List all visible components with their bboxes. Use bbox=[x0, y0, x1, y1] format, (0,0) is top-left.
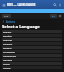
staticText: English bbox=[3, 30, 61, 33]
staticText: Svenska bbox=[3, 58, 61, 61]
button[interactable]: Polski bbox=[2, 62, 62, 65]
staticText: Select a Language bbox=[2, 24, 40, 30]
staticText: Actions bbox=[6, 20, 15, 24]
button[interactable]: Actions bbox=[0, 19, 64, 24]
button[interactable]: EN bbox=[50, 14, 57, 18]
button[interactable]: Svenska bbox=[2, 58, 62, 61]
staticText: Polski bbox=[3, 62, 61, 65]
staticText: Türkçe bbox=[3, 66, 61, 69]
button[interactable]: FILE bbox=[2, 14, 11, 18]
staticText: Français bbox=[3, 38, 61, 41]
staticText: Nederlands bbox=[3, 54, 61, 57]
button[interactable]: Italiano bbox=[2, 46, 62, 49]
button[interactable]: Menu bbox=[2, 3, 6, 7]
button[interactable]: Nederlands bbox=[2, 54, 62, 57]
staticText: RDS — LANGUAGES bbox=[7, 3, 53, 7]
button[interactable]: Settings bbox=[58, 14, 62, 18]
button[interactable]: English bbox=[2, 30, 62, 33]
staticText: Italiano bbox=[3, 46, 61, 49]
staticText: Português bbox=[3, 50, 61, 53]
button[interactable]: Español bbox=[2, 34, 62, 37]
button[interactable]: Français bbox=[2, 38, 62, 41]
staticText: Deutsch bbox=[3, 42, 61, 45]
button[interactable]: Türkçe bbox=[2, 66, 62, 69]
button[interactable]: Português bbox=[2, 50, 62, 53]
staticText: FILE bbox=[4, 15, 9, 18]
button[interactable]: Deutsch bbox=[2, 42, 62, 45]
button[interactable]: Search bbox=[53, 3, 57, 7]
staticText: Español bbox=[3, 34, 61, 37]
staticText: EN bbox=[52, 15, 55, 18]
button[interactable]: More options bbox=[58, 3, 62, 7]
